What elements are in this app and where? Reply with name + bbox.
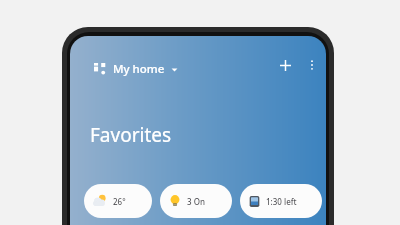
button[interactable]: 3 On (160, 184, 232, 218)
button[interactable]: 26° (84, 184, 152, 218)
staticText: 3 On (187, 196, 205, 207)
staticText: My home (113, 61, 165, 77)
button[interactable]: 1:30 left (240, 184, 322, 218)
staticText: Favorites (90, 122, 172, 148)
staticText: 1:30 left (266, 196, 297, 207)
button[interactable]: Add device (273, 53, 297, 77)
button[interactable]: More options (300, 53, 324, 77)
staticText: 26° (113, 196, 126, 207)
button[interactable]: My home (92, 58, 180, 80)
